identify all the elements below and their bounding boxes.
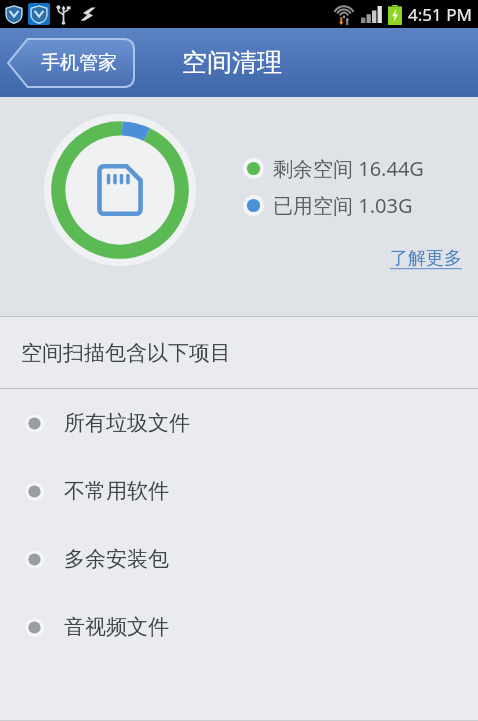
- button[interactable]: 所有垃圾文件: [0, 389, 478, 457]
- button[interactable]: 多余安装包: [0, 525, 478, 593]
- staticText: 剩余空间 16.44G: [273, 155, 424, 182]
- staticText: 音视频文件: [64, 614, 169, 640]
- staticText: 空间清理: [182, 47, 282, 78]
- button[interactable]: 音视频文件: [0, 593, 478, 661]
- staticText: 不常用软件: [64, 478, 169, 504]
- staticText: 空间扫描包含以下项目: [21, 340, 231, 366]
- staticText: 4:51 PM: [408, 3, 472, 26]
- staticText: 多余安装包: [64, 546, 169, 572]
- button[interactable]: 返回 手机管家: [8, 39, 134, 87]
- staticText: 所有垃圾文件: [64, 410, 190, 436]
- button[interactable]: 了解更多: [388, 245, 464, 272]
- button[interactable]: 不常用软件: [0, 457, 478, 525]
- staticText: 已用空间 1.03G: [273, 192, 413, 219]
- staticText: 了解更多: [390, 247, 462, 270]
- staticText: 手机管家: [41, 51, 117, 75]
